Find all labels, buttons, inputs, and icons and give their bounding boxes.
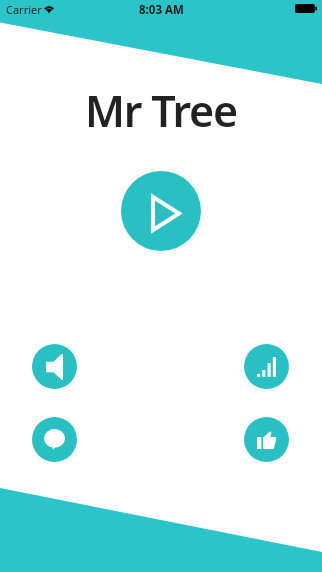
- button[interactable]: Volume: [32, 344, 77, 389]
- staticText: 8:03 AM: [139, 2, 184, 18]
- button[interactable]: Play: [121, 171, 201, 251]
- button[interactable]: Like: [244, 417, 289, 462]
- button[interactable]: Signal: [244, 344, 289, 389]
- staticText: Carrier: [6, 2, 42, 17]
- staticText: Mr Tree: [85, 81, 237, 140]
- button[interactable]: Chat: [32, 417, 77, 462]
